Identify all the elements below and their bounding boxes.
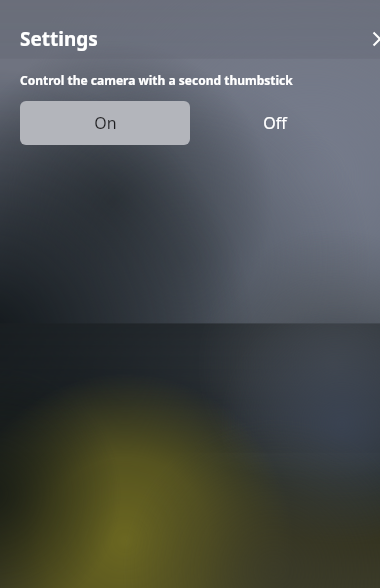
staticText: On xyxy=(94,112,117,134)
button[interactable]: Close settings xyxy=(368,27,380,51)
button[interactable]: On xyxy=(20,101,190,145)
staticText: Control the camera with a second thumbst… xyxy=(20,72,293,88)
staticText: Off xyxy=(263,112,287,134)
staticText: Settings xyxy=(20,26,98,52)
button[interactable]: Off xyxy=(190,101,360,145)
